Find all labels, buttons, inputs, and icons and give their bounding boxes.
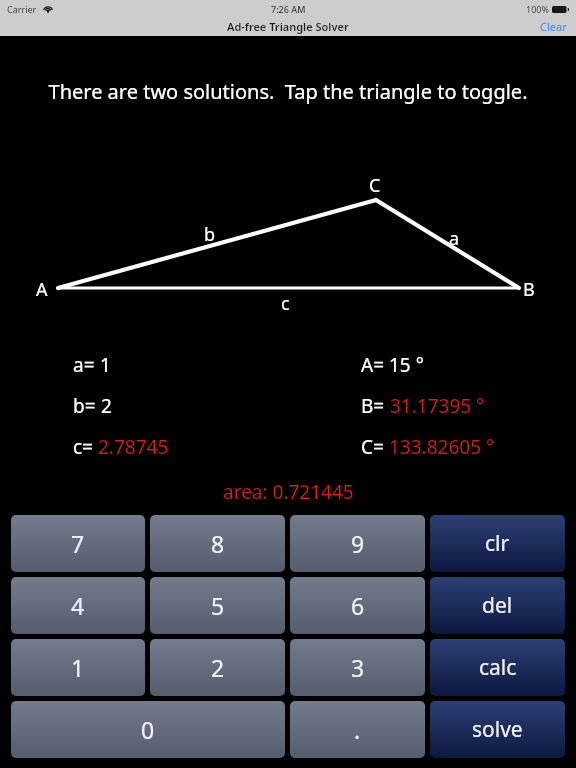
staticText: 4 <box>71 590 85 621</box>
staticText: del <box>482 591 513 620</box>
staticText: solve <box>472 715 523 744</box>
staticText: Carrier <box>7 3 37 15</box>
staticText: 31.17395 ° <box>390 393 485 419</box>
staticText: a <box>449 226 460 251</box>
button[interactable]: clr <box>430 515 565 572</box>
button[interactable]: del <box>430 577 565 634</box>
button[interactable]: calc <box>430 639 565 696</box>
staticText: A= <box>361 352 389 378</box>
staticText: 1 <box>100 352 111 378</box>
button[interactable]: 1 <box>11 639 145 696</box>
staticText: 6 <box>351 590 365 621</box>
staticText: 5 <box>211 590 225 621</box>
button[interactable]: Triangle diagram, tap to toggle solution <box>0 130 576 320</box>
staticText: 100% <box>526 3 549 15</box>
button[interactable]: Clear <box>531 17 576 36</box>
button[interactable]: . <box>290 701 425 758</box>
staticText: B= <box>361 393 390 419</box>
staticText: 9 <box>351 528 365 559</box>
button[interactable]: 2 <box>150 639 285 696</box>
staticText: B <box>523 277 535 302</box>
staticText: clr <box>485 529 510 558</box>
staticText: 3 <box>351 652 365 683</box>
staticText: 2 <box>101 393 112 419</box>
staticText: . <box>354 714 361 745</box>
staticText: C <box>369 173 381 198</box>
staticText: 8 <box>211 528 225 559</box>
button[interactable]: 0 <box>11 701 285 758</box>
staticText: 133.82605 ° <box>389 434 495 460</box>
button[interactable]: 9 <box>290 515 425 572</box>
staticText: b= <box>73 393 101 419</box>
staticText: A <box>36 277 48 302</box>
staticText: There are two solutions. Tap the triangl… <box>4 78 572 105</box>
staticText: C= <box>361 434 389 460</box>
staticText: 2.78745 <box>98 434 169 460</box>
staticText: 7 <box>71 528 85 559</box>
button[interactable]: 8 <box>150 515 285 572</box>
staticText: 7:26 AM <box>271 3 306 15</box>
staticText: a= <box>73 352 100 378</box>
staticText: 15 ° <box>389 352 424 378</box>
button[interactable]: 5 <box>150 577 285 634</box>
staticText: Ad-free Triangle Solver <box>227 19 349 34</box>
button[interactable]: 6 <box>290 577 425 634</box>
staticText: Clear <box>540 19 567 34</box>
button[interactable]: solve <box>430 701 565 758</box>
button[interactable]: 4 <box>11 577 145 634</box>
staticText: area: 0.721445 <box>223 479 354 505</box>
staticText: 2 <box>211 652 225 683</box>
button[interactable]: 3 <box>290 639 425 696</box>
staticText: c <box>281 291 290 316</box>
staticText: b <box>204 222 216 247</box>
staticText: 1 <box>71 652 85 683</box>
staticText: calc <box>479 653 517 682</box>
button[interactable]: 7 <box>11 515 145 572</box>
staticText: 0 <box>141 714 155 745</box>
staticText: c= <box>73 434 98 460</box>
